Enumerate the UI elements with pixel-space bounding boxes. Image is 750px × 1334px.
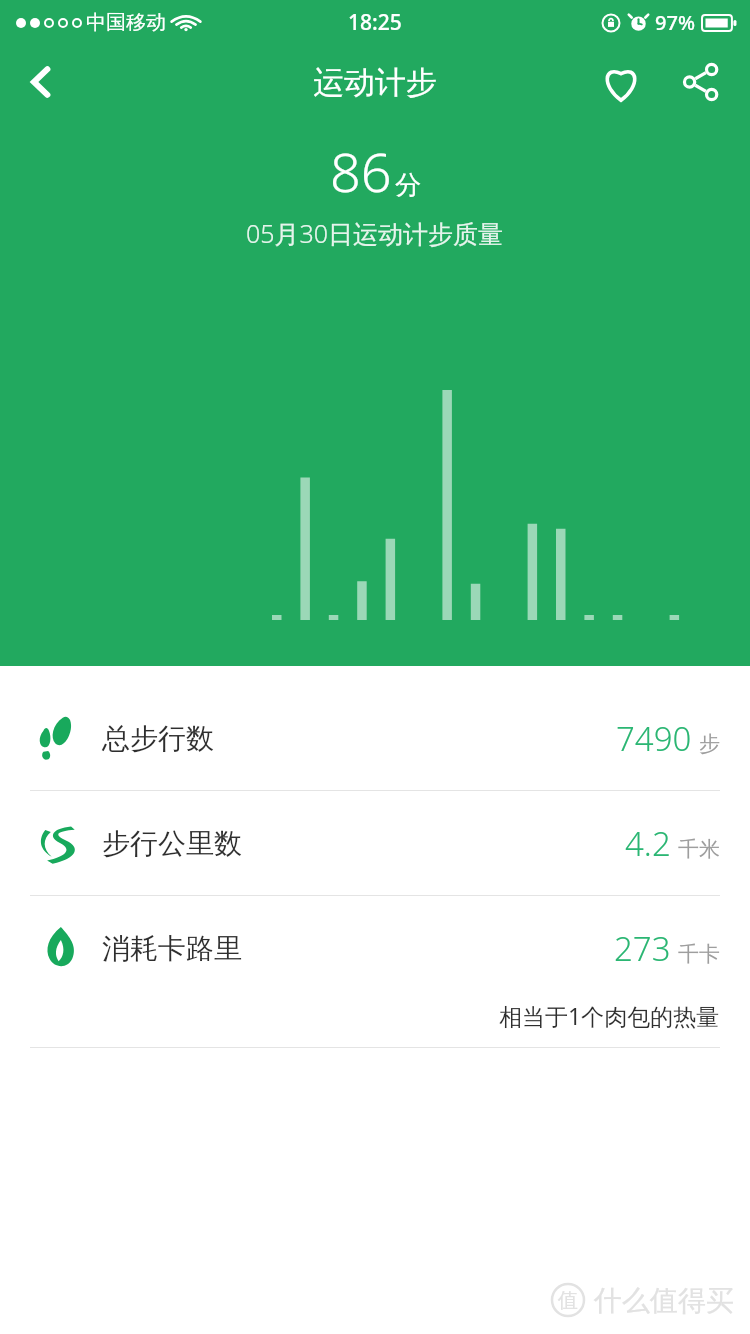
staticText: 4.2 bbox=[625, 821, 671, 866]
button[interactable]: Favorite bbox=[586, 47, 656, 117]
staticText: 分 bbox=[395, 169, 421, 202]
staticText: 什么值得买 bbox=[594, 1283, 734, 1318]
staticText: 7490 bbox=[616, 716, 692, 761]
button[interactable]: 总步行数 bbox=[0, 686, 750, 790]
staticText: 273 bbox=[614, 926, 671, 971]
staticText: 千卡 bbox=[678, 941, 720, 967]
staticText: 05月30日运动计步质量 bbox=[246, 216, 504, 250]
staticText: 步 bbox=[699, 731, 720, 757]
staticText: 千米 bbox=[678, 836, 720, 862]
staticText: 运动计步 bbox=[313, 63, 437, 102]
button[interactable]: 消耗卡路里 bbox=[0, 896, 750, 1047]
staticText: 86 bbox=[330, 134, 392, 208]
staticText: 97% bbox=[655, 9, 695, 36]
staticText: 值 bbox=[558, 1288, 578, 1313]
staticText: 18:25 bbox=[348, 8, 402, 37]
button[interactable]: Back bbox=[6, 47, 76, 117]
staticText: 中国移动 bbox=[86, 10, 166, 35]
button[interactable]: 步行公里数 bbox=[0, 791, 750, 895]
staticText: 消耗卡路里 bbox=[102, 931, 242, 966]
button[interactable]: Share bbox=[666, 47, 736, 117]
staticText: 总步行数 bbox=[102, 721, 214, 756]
staticText: 步行公里数 bbox=[102, 826, 242, 861]
staticText: 相当于1个肉包的热量 bbox=[499, 1000, 720, 1031]
